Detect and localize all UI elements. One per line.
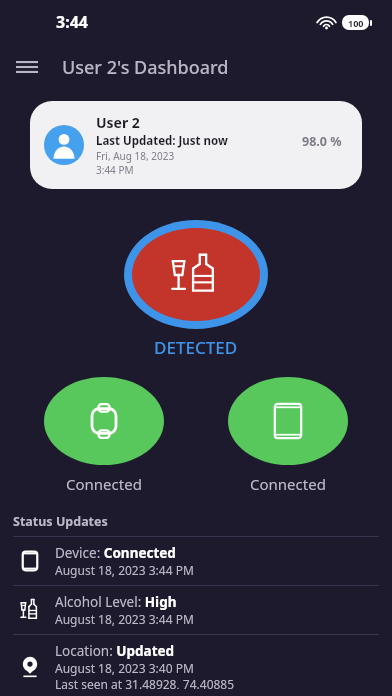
staticText: August 18, 2023 3:40 PM bbox=[55, 660, 194, 676]
staticText: Status Updates bbox=[13, 513, 108, 530]
button[interactable]: Open navigation menu bbox=[6, 46, 48, 88]
staticText: 3:44 bbox=[56, 11, 88, 33]
staticText: August 18, 2023 3:44 PM bbox=[55, 611, 194, 627]
staticText: Device: Connected bbox=[55, 544, 176, 562]
staticText: User 2 bbox=[96, 113, 140, 132]
button[interactable]: Alcohol detected bbox=[124, 220, 268, 329]
staticText: Last seen at 31.48928, 74.40885 bbox=[55, 676, 235, 689]
staticText: User 2's Dashboard bbox=[62, 55, 229, 80]
staticText: 100 bbox=[348, 17, 364, 29]
staticText: Connected bbox=[250, 474, 326, 494]
button[interactable]: Phone connected bbox=[228, 377, 348, 494]
staticText: 3:44 PM bbox=[96, 163, 134, 177]
staticText: Connected bbox=[66, 474, 142, 494]
button[interactable]: Watch connected bbox=[44, 377, 164, 494]
button[interactable]: Device: Connected bbox=[0, 537, 392, 585]
staticText: August 18, 2023 3:44 PM bbox=[55, 562, 194, 578]
button[interactable]: Alcohol Level: High bbox=[0, 586, 392, 634]
staticText: DETECTED bbox=[154, 336, 238, 359]
staticText: Fri, Aug 18, 2023 bbox=[96, 149, 175, 163]
staticText: Location: Updated bbox=[55, 642, 175, 660]
button[interactable]: User 2 bbox=[30, 101, 362, 189]
button[interactable]: Location: Updated bbox=[0, 635, 392, 696]
staticText: 98.0 % bbox=[302, 133, 342, 150]
staticText: Alcohol Level: High bbox=[55, 593, 177, 611]
staticText: Last Updated: Just now bbox=[96, 133, 228, 149]
